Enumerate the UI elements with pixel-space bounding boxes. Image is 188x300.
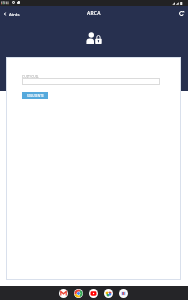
staticText: ARCA [87,10,101,17]
button[interactable] [22,78,160,85]
staticText: SIGUIENTE [27,94,44,98]
button[interactable]: SIGUIENTE [22,92,48,99]
staticText: CUIT/CUIL [22,74,39,78]
button[interactable]: Photos [104,289,113,298]
button[interactable]: Gmail [59,289,68,298]
button[interactable]: Reload [175,8,188,19]
staticText: Atrás [9,11,20,17]
button[interactable]: Chrome [74,289,83,298]
button[interactable]: App [119,289,128,298]
button[interactable]: YouTube [89,289,98,298]
button[interactable]: Atrás [0,9,23,19]
